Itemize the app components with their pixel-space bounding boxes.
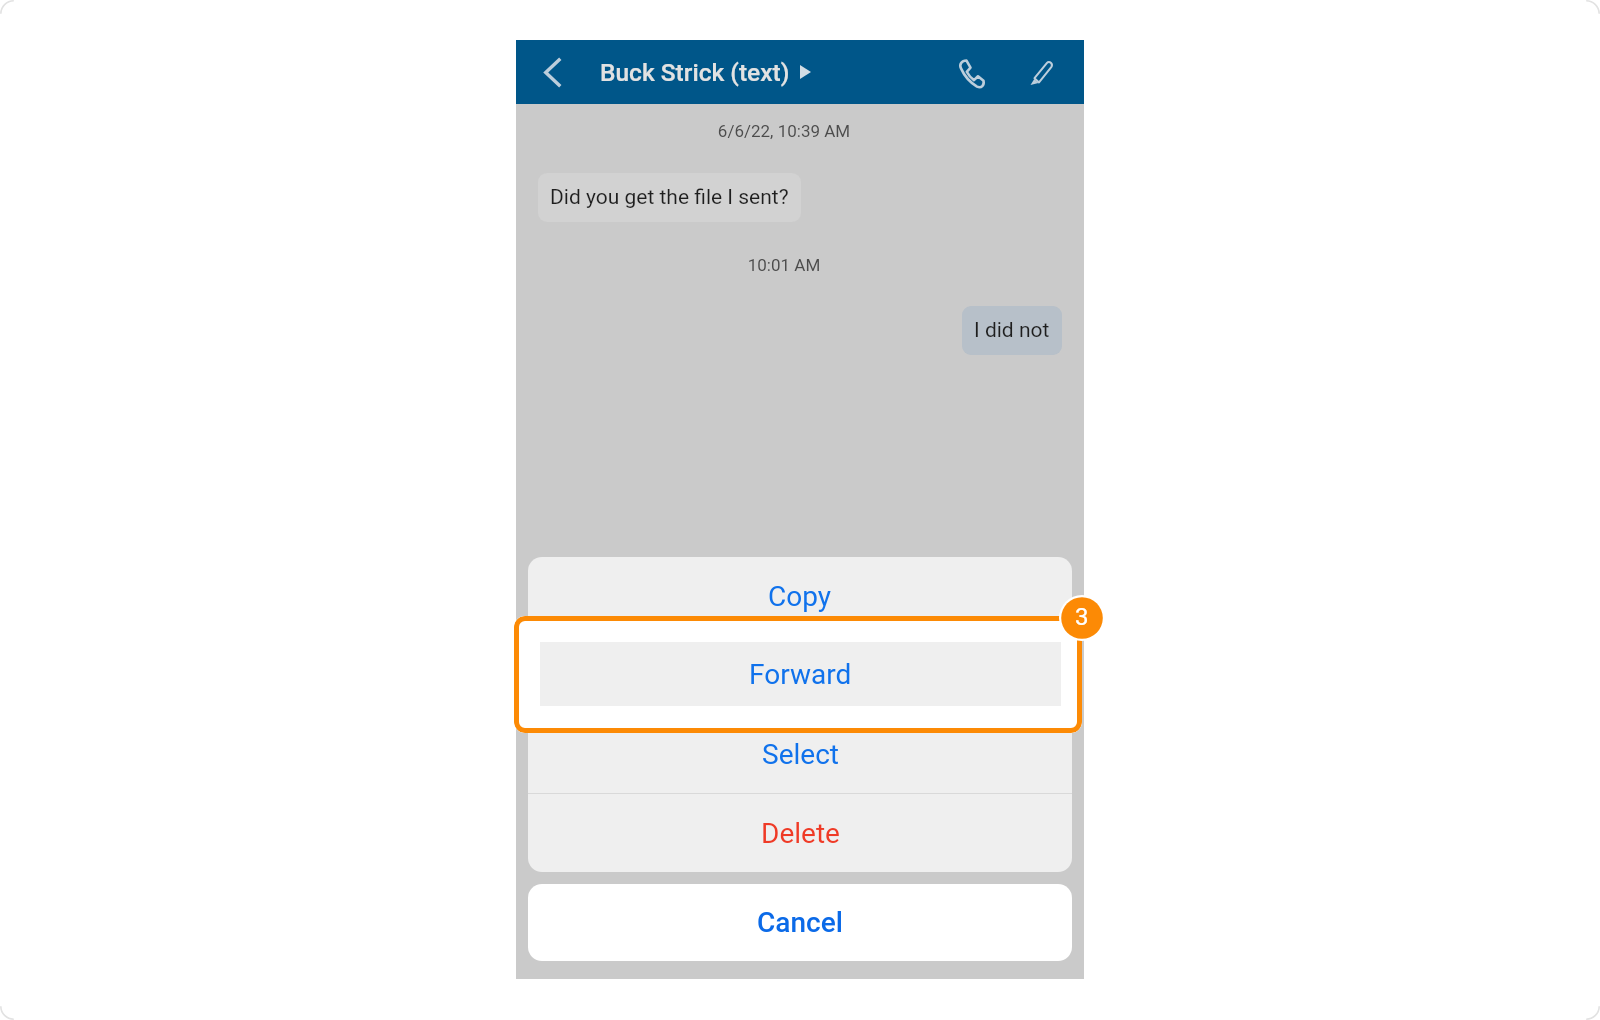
button[interactable]: Select — [528, 715, 1072, 794]
button[interactable]: I did not — [962, 306, 1062, 355]
button[interactable]: Forward — [528, 636, 1072, 715]
button[interactable]: Buck Strick (text) — [600, 40, 811, 104]
button[interactable]: Compose message — [1010, 40, 1072, 104]
staticText: Copy — [768, 580, 832, 613]
button[interactable]: Did you get the file I sent? — [538, 173, 801, 222]
staticText: Forward — [749, 659, 852, 692]
button[interactable]: Copy — [528, 557, 1072, 636]
staticText: Forward — [749, 658, 852, 691]
staticText: Did you get the file I sent? — [550, 185, 789, 210]
button[interactable]: Call — [940, 40, 1002, 104]
staticText: 10:01 AM — [500, 255, 1068, 275]
button[interactable]: Forward — [514, 616, 1082, 733]
staticText: Cancel — [757, 906, 843, 939]
button[interactable]: Cancel — [528, 884, 1072, 961]
button[interactable]: Delete — [528, 794, 1072, 872]
staticText: Buck Strick (text) — [600, 58, 790, 87]
staticText: I did not — [974, 318, 1050, 343]
staticText: Select — [762, 738, 839, 771]
staticText: 6/6/22, 10:39 AM — [500, 121, 1068, 141]
staticText: Delete — [761, 817, 840, 850]
button[interactable]: Back — [521, 40, 585, 104]
staticText: 3 — [1075, 603, 1089, 631]
